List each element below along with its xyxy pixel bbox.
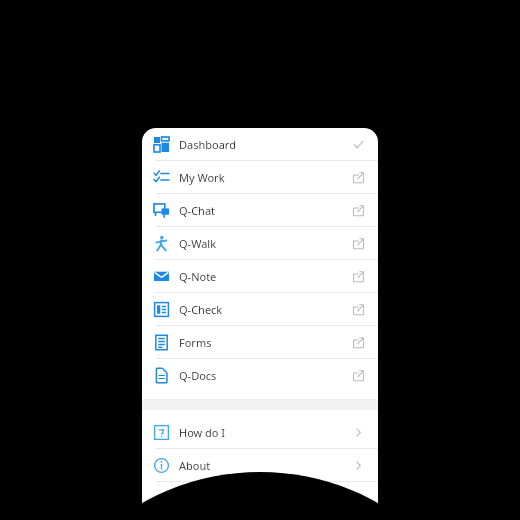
staticText: Q-Check bbox=[179, 302, 223, 317]
staticText: Q-Chat bbox=[179, 203, 216, 218]
button[interactable]: Q-Note bbox=[142, 260, 378, 292]
button[interactable]: Activate Device toggle bbox=[338, 492, 364, 506]
button[interactable]: Forms bbox=[142, 326, 378, 358]
button[interactable]: Q-Walk bbox=[142, 227, 378, 259]
button[interactable]: Q-Docs bbox=[142, 359, 378, 391]
staticText: Q-Docs bbox=[179, 368, 217, 383]
button[interactable]: Q-Check bbox=[142, 293, 378, 325]
button[interactable]: How do I bbox=[142, 416, 378, 448]
button[interactable]: Q-Chat bbox=[142, 194, 378, 226]
staticText: Dashboard bbox=[179, 137, 236, 152]
staticText: Q-Walk bbox=[179, 236, 217, 251]
button[interactable]: Activate Device bbox=[142, 482, 378, 515]
button[interactable]: My Work bbox=[142, 161, 378, 193]
staticText: Q-Note bbox=[179, 269, 217, 284]
staticText: How do I bbox=[179, 425, 226, 440]
staticText: About bbox=[179, 458, 211, 473]
staticText: My Work bbox=[179, 170, 225, 185]
button[interactable]: About bbox=[142, 449, 378, 481]
staticText: Forms bbox=[179, 335, 212, 350]
staticText: Activate Device bbox=[156, 491, 234, 506]
button[interactable]: Dashboard bbox=[142, 128, 378, 160]
